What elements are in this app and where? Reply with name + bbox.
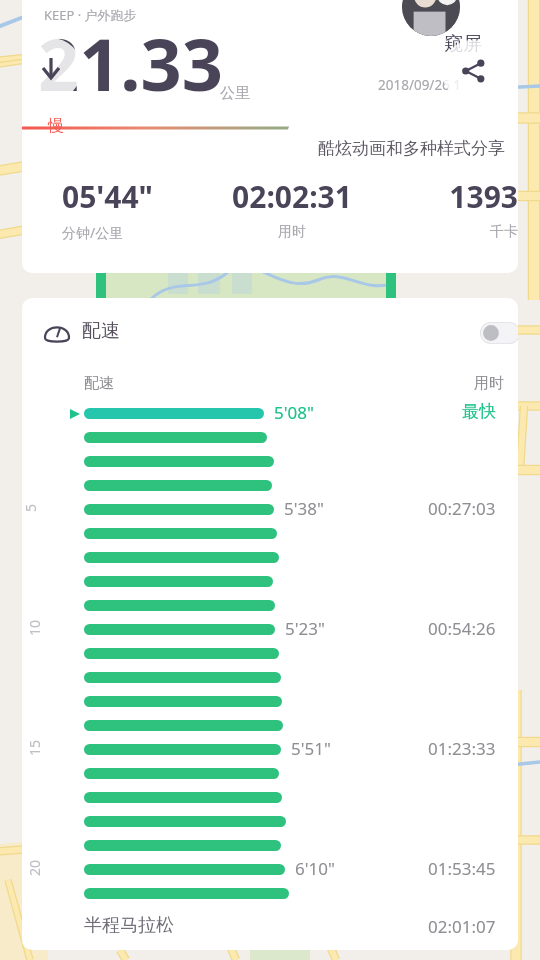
staticText: 21.33 bbox=[38, 14, 223, 112]
staticText: 01:53:45 bbox=[428, 857, 496, 880]
staticText: 5'23" bbox=[285, 617, 325, 640]
staticText: 公里 bbox=[220, 84, 250, 103]
staticText: 5'08" bbox=[274, 401, 314, 424]
button[interactable]: 酷炫动画和多种样式分享 bbox=[288, 124, 518, 172]
staticText: 02:02:31 bbox=[228, 176, 356, 217]
button[interactable]: Profile bbox=[402, 0, 460, 36]
staticText: KEEP · 户外跑步 bbox=[44, 6, 137, 24]
staticText: 01:23:33 bbox=[428, 737, 496, 760]
staticText: 15 bbox=[25, 739, 44, 756]
staticText: 用时 bbox=[474, 374, 504, 393]
staticText: 1393 bbox=[392, 176, 518, 217]
staticText: 05'44" bbox=[62, 176, 182, 217]
staticText: 千卡 bbox=[392, 223, 518, 241]
staticText: 窥屏 bbox=[444, 32, 482, 56]
staticText: 慢 bbox=[48, 116, 64, 136]
staticText: 2018/09/26 1 bbox=[378, 76, 462, 94]
staticText: 00:27:03 bbox=[428, 497, 496, 520]
button[interactable]: Share bbox=[442, 40, 504, 102]
staticText: 20 bbox=[25, 859, 44, 876]
staticText: 5 bbox=[22, 503, 40, 512]
staticText: 半程马拉松 bbox=[84, 914, 174, 937]
staticText: 6'10" bbox=[295, 857, 335, 880]
button[interactable]: Toggle pace bbox=[480, 322, 518, 344]
staticText: 分钟/公里 bbox=[62, 223, 182, 242]
staticText: 10 bbox=[25, 619, 44, 636]
staticText: 配速 bbox=[84, 374, 114, 393]
staticText: 02:01:07 bbox=[428, 915, 496, 938]
staticText: 最快 bbox=[462, 401, 496, 422]
staticText: 配速 bbox=[82, 319, 120, 343]
staticText: 5'38" bbox=[284, 497, 324, 520]
staticText: 5'51" bbox=[291, 737, 331, 760]
staticText: 酷炫动画和多种样式分享 bbox=[318, 138, 505, 159]
staticText: 用时 bbox=[228, 223, 356, 241]
button[interactable]: Download bbox=[22, 38, 82, 100]
staticText: 00:54:26 bbox=[428, 617, 496, 640]
